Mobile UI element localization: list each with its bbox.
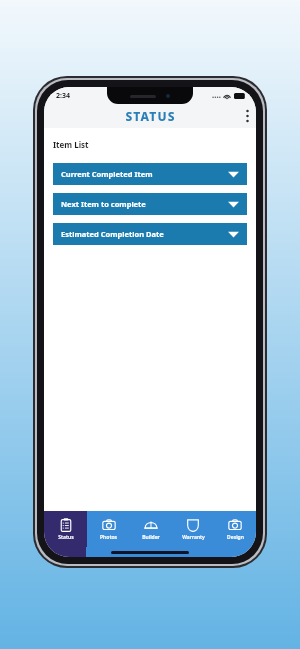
staticText: Design (227, 534, 244, 541)
staticText: Current Completed Item (61, 169, 153, 179)
staticText: Estimated Completion Date (61, 229, 164, 239)
staticText: Builder (142, 534, 160, 541)
button[interactable]: Warranty (172, 511, 214, 547)
staticText: 2:34 (56, 91, 70, 101)
button[interactable]: Next Item to complete (53, 193, 247, 215)
button[interactable]: Builder (130, 511, 172, 547)
button[interactable]: Photos (87, 511, 130, 547)
staticText: Warranty (182, 534, 205, 541)
button[interactable]: Current Completed Item (53, 163, 247, 185)
button[interactable]: Design (214, 511, 256, 547)
staticText: STATUS (125, 108, 176, 124)
staticText: Item List (53, 139, 89, 150)
button[interactable]: Status (44, 511, 87, 547)
staticText: Next Item to complete (61, 199, 146, 209)
staticText: Photos (100, 534, 117, 541)
staticText: Status (58, 534, 74, 541)
button[interactable]: Estimated Completion Date (53, 223, 247, 245)
button[interactable]: More options (238, 104, 256, 128)
